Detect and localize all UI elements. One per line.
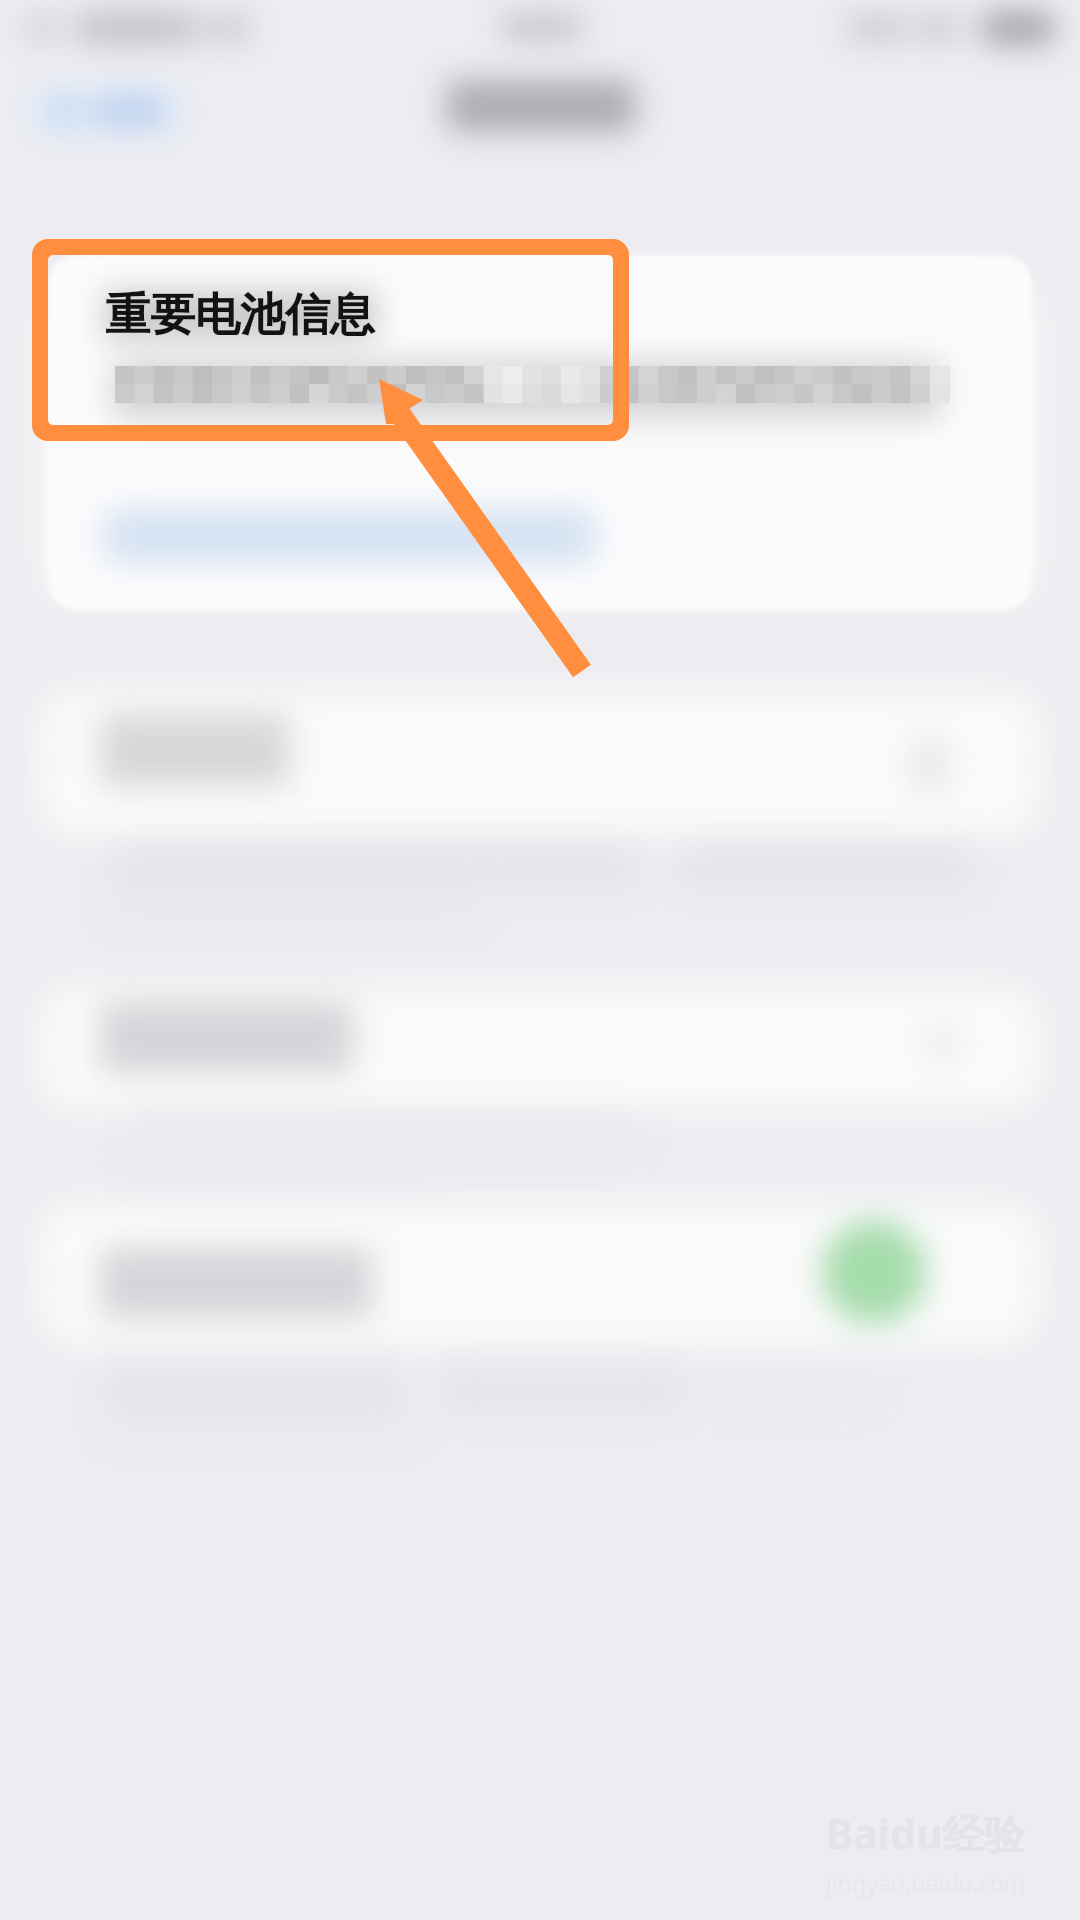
button[interactable]: Setting row 3 [48,1202,1032,1345]
staticText: 重要电池信息 [105,287,375,344]
staticText: Baidu经验 [826,1805,1025,1861]
button[interactable]: Setting row 2 [48,986,1032,1110]
button[interactable]: Setting row 1 [48,690,1032,836]
button[interactable]: Important battery information highlighte… [0,0,1080,1920]
button[interactable]: Back [28,84,186,138]
button[interactable]: 重要电池信息 [48,255,1032,610]
